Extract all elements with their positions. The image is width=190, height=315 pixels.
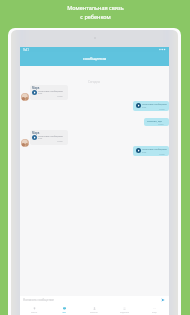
staticText: Хорошо, еду [147,119,163,122]
staticText: Сегодня [88,80,101,84]
staticText: Написать сообщение [23,298,55,302]
staticText: 12:06 [159,153,165,156]
staticText: 0:05 [38,92,43,95]
staticText: Моментальная связь [67,4,124,11]
button[interactable]: Хорошо, еду [144,118,169,126]
button[interactable]: сообщения [20,52,169,66]
staticText: 12:05 [57,140,63,143]
staticText: сообщения [83,56,107,62]
staticText: Голосовое сообщение [142,148,167,151]
button[interactable]: Чат [49,305,79,314]
button[interactable]: Звонок [79,305,109,314]
staticText: Марк [32,86,40,90]
staticText: 0:05 [142,106,147,109]
button[interactable]: Карта [20,305,49,314]
staticText: Марк [32,131,40,135]
staticText: 9:41 [23,48,29,52]
staticText: Звонок [90,311,98,314]
staticText: 0:05 [38,137,43,140]
staticText: Карта [31,311,38,314]
button[interactable]: Задания [109,305,139,314]
staticText: Ещё [152,311,157,314]
staticText: Чат [62,311,66,314]
staticText: 12:05 [57,95,63,98]
button[interactable]: Голосовое сообщение [133,146,169,156]
staticText: с ребенком [80,13,111,20]
staticText: 0:05 [142,151,147,154]
button[interactable]: Голосовое сообщение [133,101,169,111]
staticText: Голосовое сообщение [38,135,63,138]
staticText: Голосовое сообщение [38,90,63,93]
button[interactable]: Марк [30,130,68,145]
button[interactable]: Марк [30,85,68,100]
staticText: 12:07 [158,123,164,126]
staticText: Голосовое сообщение [142,103,167,106]
other: Отправить [161,298,165,302]
staticText: 12:06 [159,108,165,111]
staticText: Задания [120,311,129,314]
button[interactable]: Ещё [139,305,169,314]
